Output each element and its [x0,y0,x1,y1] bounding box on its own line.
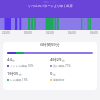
staticText: いつものパターンより早く起床 [28,4,73,8]
button[interactable]: 1時05 [7,71,50,82]
staticText: 00:00 [24,31,32,35]
staticText: 0 [50,71,53,77]
staticText: 覚醒時間 [53,78,65,82]
staticText: 浅い睡眠 71% [53,64,71,68]
button[interactable]: 0 [50,71,93,82]
staticText: 06:00 [90,31,98,35]
staticText: 分 [62,59,65,63]
staticText: 分 [12,59,15,63]
staticText: 02:00 [46,31,54,35]
staticText: 睡眠スコア [43,0,57,3]
staticText: レム睡眠 15% [10,78,28,82]
staticText: 22:00 [2,31,10,35]
button[interactable]: 44 [7,57,50,68]
staticText: 分 [19,73,22,77]
staticText: 04:00 [68,31,76,35]
staticText: 4時29 [50,57,62,63]
staticText: 1時05 [7,71,19,77]
button[interactable]: 4時29 [50,57,93,68]
staticText: 6時間59分 [7,42,93,48]
staticText: 分 [53,73,56,77]
staticText: ノンレム睡眠 10% [10,64,34,68]
staticText: 44 [7,57,12,63]
